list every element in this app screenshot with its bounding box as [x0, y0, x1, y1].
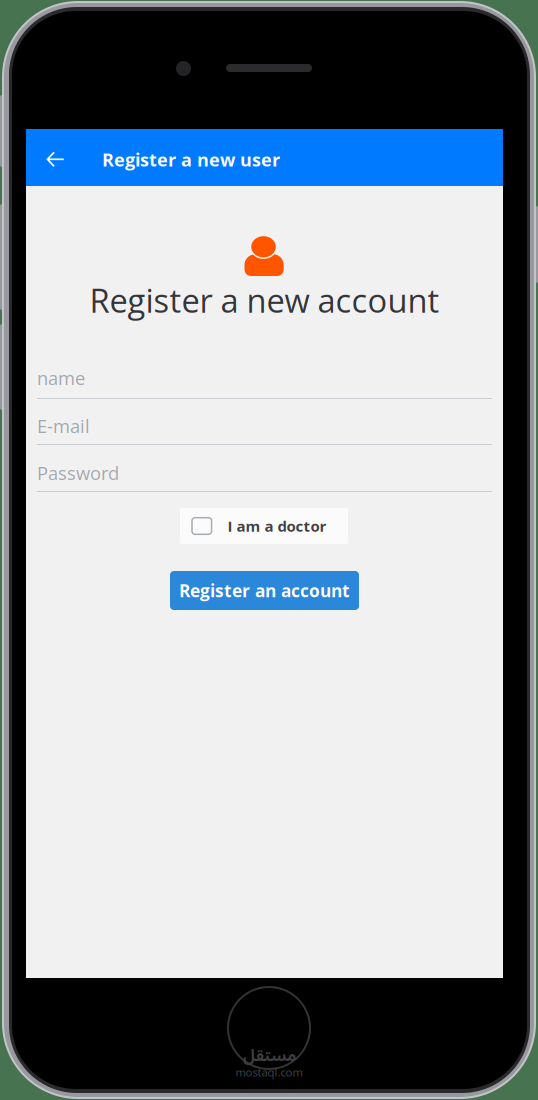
button[interactable]: Password — [37, 455, 492, 492]
staticText: name — [37, 365, 85, 390]
staticText: مستقل — [242, 1039, 295, 1073]
button[interactable]: Back — [26, 129, 82, 186]
staticText: Register a new account — [89, 278, 439, 322]
staticText: Register an account — [179, 579, 350, 602]
staticText: Register a new user — [102, 147, 280, 172]
button[interactable]: Register an account — [170, 571, 359, 610]
button[interactable]: name — [37, 360, 492, 399]
button[interactable]: E-mail — [37, 408, 492, 445]
staticText: Password — [37, 460, 119, 485]
staticText: E-mail — [37, 413, 90, 438]
staticText: I am a doctor — [228, 516, 327, 536]
button[interactable]: I am a doctor — [180, 508, 348, 544]
staticText: mostaql.com — [235, 1064, 302, 1080]
